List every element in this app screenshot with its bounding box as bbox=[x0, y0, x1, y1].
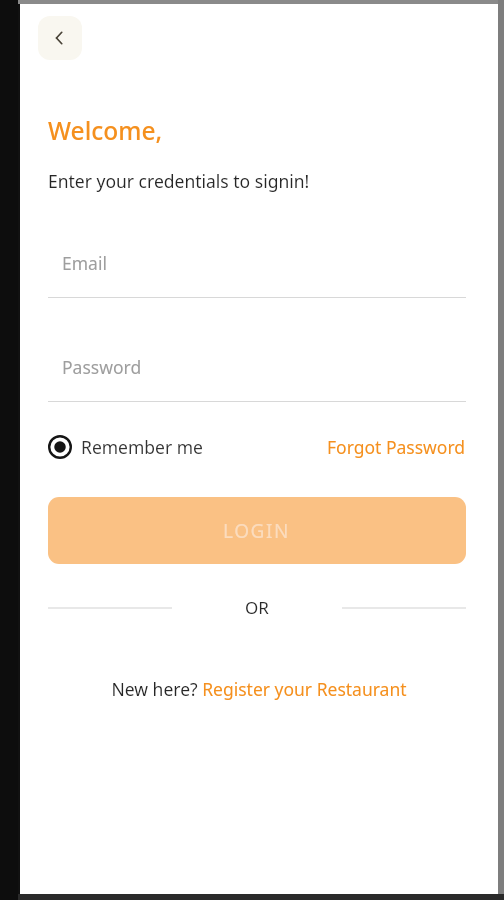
button[interactable]: Email bbox=[48, 251, 466, 298]
button[interactable]: Forgot Password bbox=[327, 435, 466, 459]
staticText: Forgot Password bbox=[327, 435, 466, 459]
button[interactable]: Password bbox=[48, 355, 466, 402]
button[interactable]: New here? Register your Restaurant bbox=[111, 677, 407, 701]
staticText: Email bbox=[62, 251, 107, 275]
button[interactable]: Remember me bbox=[48, 435, 203, 459]
staticText: Welcome, bbox=[48, 114, 163, 147]
staticText: LOGIN bbox=[223, 518, 291, 544]
staticText: Password bbox=[62, 355, 142, 379]
staticText: Enter your credentials to signin! bbox=[48, 169, 310, 193]
staticText: Remember me bbox=[81, 435, 203, 459]
button[interactable]: Back bbox=[38, 16, 82, 60]
button[interactable]: LOGIN bbox=[48, 497, 466, 564]
staticText: OR bbox=[245, 596, 269, 619]
